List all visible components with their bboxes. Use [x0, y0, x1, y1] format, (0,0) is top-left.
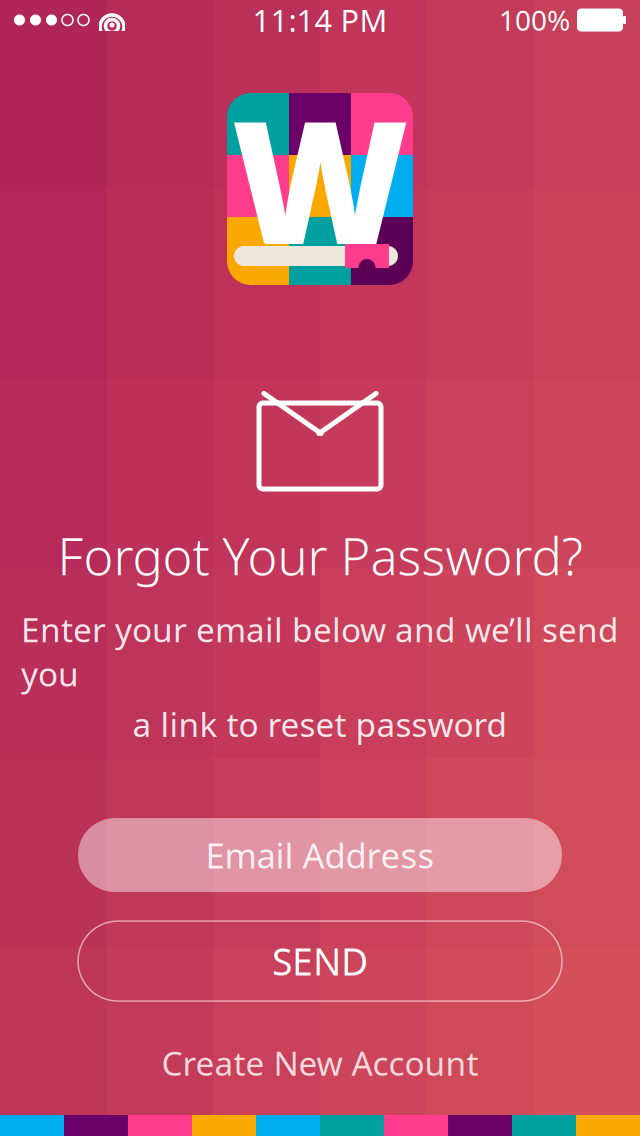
staticText: Email Address [205, 832, 434, 878]
staticText: W [231, 65, 408, 291]
button[interactable]: SEND [78, 921, 562, 1001]
staticText: 100% [499, 1, 570, 39]
staticText: 11:14 PM [252, 0, 387, 40]
button[interactable]: Create New Account [137, 1031, 502, 1095]
staticText: Forgot Your Password? [57, 522, 582, 589]
staticText: Enter your email below and we’ll send yo… [21, 607, 619, 696]
button[interactable]: Email Address [78, 818, 562, 892]
staticText: SEND [272, 936, 368, 986]
staticText: Create New Account [161, 1041, 478, 1085]
staticText: a link to reset password [132, 702, 507, 746]
